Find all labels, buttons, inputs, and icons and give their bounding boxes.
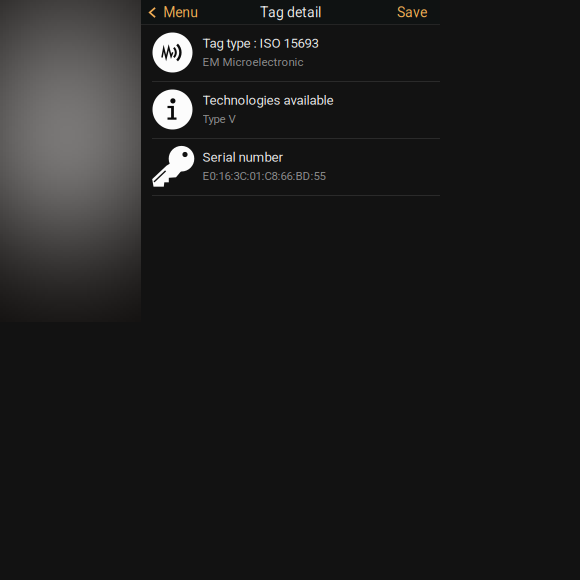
staticText: Tag detail — [260, 4, 321, 21]
staticText: Save — [397, 4, 427, 21]
staticText: Menu — [163, 4, 198, 21]
staticText: Serial number — [202, 149, 283, 165]
staticText: EM Microelectronic — [202, 55, 303, 69]
staticText: E0:16:3C:01:C8:66:BD:55 — [202, 169, 325, 183]
button[interactable]: Tag type : ISO 15693 — [141, 25, 440, 82]
button[interactable]: Serial number — [141, 139, 440, 196]
button[interactable]: Menu — [141, 0, 204, 25]
staticText: Type V — [202, 112, 235, 126]
button[interactable]: Technologies available — [141, 82, 440, 139]
button[interactable]: Save — [390, 0, 434, 25]
staticText: Tag type : ISO 15693 — [202, 35, 318, 51]
staticText: Technologies available — [202, 92, 333, 108]
